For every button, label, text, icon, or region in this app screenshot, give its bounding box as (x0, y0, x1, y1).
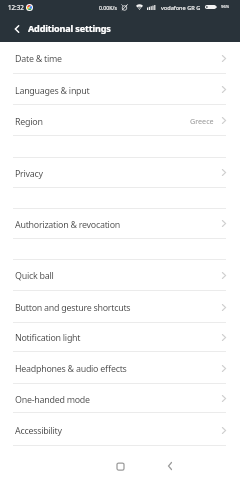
button[interactable]: Back (160, 456, 180, 476)
staticText: Privacy (15, 167, 43, 179)
button[interactable]: Date & time (0, 42, 240, 74)
staticText: Greece (190, 116, 214, 126)
button[interactable]: Back (6, 15, 27, 42)
staticText: Headphones & audio effects (15, 362, 127, 374)
button[interactable]: Notification light (0, 322, 240, 352)
button[interactable]: Button and gesture shortcuts (0, 291, 240, 323)
staticText: Date & time (15, 52, 62, 64)
staticText: Quick ball (15, 269, 54, 281)
button[interactable]: Accessibility (0, 414, 240, 446)
button[interactable]: Home (110, 456, 130, 476)
staticText: One-handed mode (15, 393, 90, 405)
button[interactable]: Region (0, 105, 240, 136)
button[interactable]: Languages & input (0, 74, 240, 105)
staticText: vodafone GR G (161, 4, 201, 12)
staticText: Languages & input (15, 84, 90, 96)
staticText: Region (15, 115, 43, 127)
button[interactable]: One-handed mode (0, 384, 240, 413)
staticText: Authorization & revocation (15, 218, 120, 230)
button[interactable]: Headphones & audio effects (0, 352, 240, 384)
button[interactable]: Authorization & revocation (0, 208, 240, 239)
button[interactable]: Quick ball (0, 259, 240, 291)
staticText: 96% (221, 4, 230, 10)
staticText: 12:32 (8, 3, 24, 11)
staticText: 0.00K/s (99, 4, 117, 11)
staticText: Additional settings (28, 22, 111, 34)
staticText: Notification light (15, 331, 81, 343)
staticText: Accessibility (15, 424, 62, 436)
staticText: Button and gesture shortcuts (15, 301, 131, 313)
button[interactable]: Privacy (0, 157, 240, 188)
